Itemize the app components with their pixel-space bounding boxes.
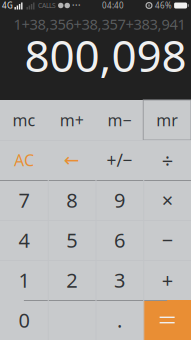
- staticText: ←: [64, 149, 80, 171]
- staticText: 5: [66, 227, 77, 253]
- button[interactable]: mc: [0, 100, 48, 140]
- staticText: 46%: [155, 0, 172, 11]
- button[interactable]: +: [143, 260, 191, 300]
- staticText: 7: [18, 187, 29, 213]
- staticText: 2: [66, 267, 77, 293]
- button[interactable]: −: [143, 220, 191, 260]
- button[interactable]: Equals: [143, 300, 191, 340]
- button[interactable]: 0: [0, 300, 95, 340]
- staticText: AC: [14, 149, 34, 171]
- button[interactable]: 3: [95, 260, 143, 300]
- button[interactable]: m+: [48, 100, 96, 140]
- button[interactable]: 6: [95, 220, 143, 260]
- button[interactable]: mr: [143, 100, 191, 140]
- staticText: 0: [18, 307, 29, 333]
- button[interactable]: ←: [48, 140, 96, 180]
- staticText: 8: [66, 187, 77, 213]
- staticText: +: [162, 267, 173, 293]
- staticText: ÷: [162, 147, 173, 173]
- staticText: ×: [162, 187, 173, 213]
- button[interactable]: 4: [0, 220, 48, 260]
- staticText: .: [117, 307, 122, 333]
- button[interactable]: 5: [48, 220, 96, 260]
- staticText: 3: [114, 267, 125, 293]
- button[interactable]: AC: [0, 140, 48, 180]
- button[interactable]: ÷: [143, 140, 191, 180]
- staticText: mc: [12, 109, 35, 131]
- staticText: 1+38,356+38,357+383,941: [13, 14, 185, 34]
- staticText: 4: [18, 227, 29, 253]
- staticText: m+: [60, 109, 84, 131]
- staticText: 6: [114, 227, 125, 253]
- button[interactable]: ×: [143, 180, 191, 220]
- staticText: •••: [72, 1, 81, 10]
- button[interactable]: .: [95, 300, 143, 340]
- button[interactable]: 2: [48, 260, 96, 300]
- staticText: 800,098: [24, 26, 186, 84]
- button[interactable]: 7: [0, 180, 48, 220]
- staticText: 1: [18, 267, 29, 293]
- button[interactable]: 9: [95, 180, 143, 220]
- button[interactable]: +/−: [95, 140, 143, 180]
- staticText: 4G: [2, 0, 13, 11]
- staticText: +/−: [106, 148, 132, 171]
- staticText: CALLS: [38, 1, 56, 10]
- staticText: −: [162, 227, 173, 253]
- staticText: 9: [114, 187, 125, 213]
- staticText: 04:40: [102, 0, 124, 11]
- staticText: m−: [107, 109, 131, 131]
- button[interactable]: 1: [0, 260, 48, 300]
- button[interactable]: 8: [48, 180, 96, 220]
- button[interactable]: m−: [95, 100, 143, 140]
- staticText: mr: [156, 109, 178, 131]
